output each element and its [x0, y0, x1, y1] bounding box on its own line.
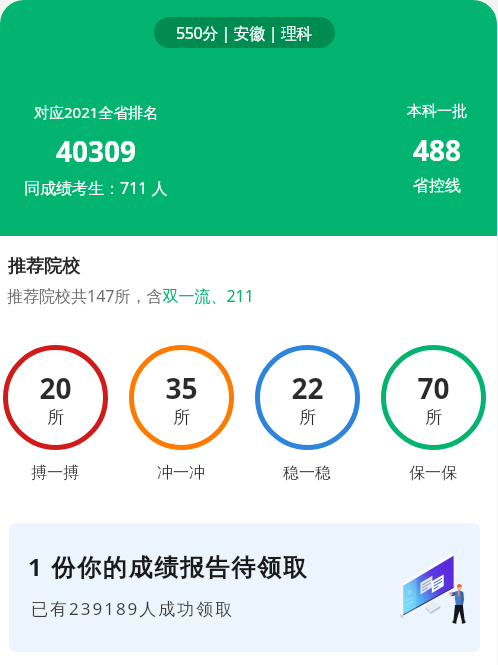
staticText: 70	[381, 369, 486, 407]
staticText: 本科一批	[407, 102, 467, 121]
staticText: 488	[413, 131, 462, 169]
other: 成绩报告插图	[392, 545, 480, 650]
button[interactable]: 对应2021全省排名	[6, 102, 186, 199]
staticText: 所	[3, 407, 108, 428]
button[interactable]: 550分 | 安徽 | 理科	[154, 17, 335, 48]
button[interactable]: 20	[0, 339, 118, 484]
staticText: 推荐院校共147所，含双一流、211	[7, 285, 254, 307]
staticText: 1 份你的成绩报告待领取	[28, 550, 309, 583]
button[interactable]: 本科一批	[382, 102, 492, 196]
staticText: 搏一搏	[0, 463, 118, 483]
staticText: 所	[255, 407, 360, 428]
button[interactable]: 35	[118, 339, 244, 484]
button[interactable]: 70	[370, 339, 496, 484]
staticText: 推荐院校	[8, 255, 80, 278]
staticText: 对应2021全省排名	[34, 102, 159, 122]
staticText: 所	[129, 407, 234, 428]
staticText: 省控线	[413, 176, 461, 196]
staticText: 40309	[56, 132, 137, 170]
staticText: 所	[381, 407, 486, 428]
staticText: 同成绩考生：711 人	[24, 177, 168, 199]
button[interactable]: 1 份你的成绩报告待领取	[9, 523, 480, 652]
staticText: 已有239189人成功领取	[31, 597, 235, 620]
staticText: 35	[129, 369, 234, 407]
staticText: 保一保	[370, 463, 496, 483]
staticText: 22	[255, 369, 360, 407]
staticText: 20	[3, 369, 108, 407]
staticText: 冲一冲	[118, 463, 244, 483]
staticText: 550分 | 安徽 | 理科	[176, 22, 313, 44]
button[interactable]: 22	[244, 339, 370, 484]
staticText: 稳一稳	[244, 463, 370, 483]
